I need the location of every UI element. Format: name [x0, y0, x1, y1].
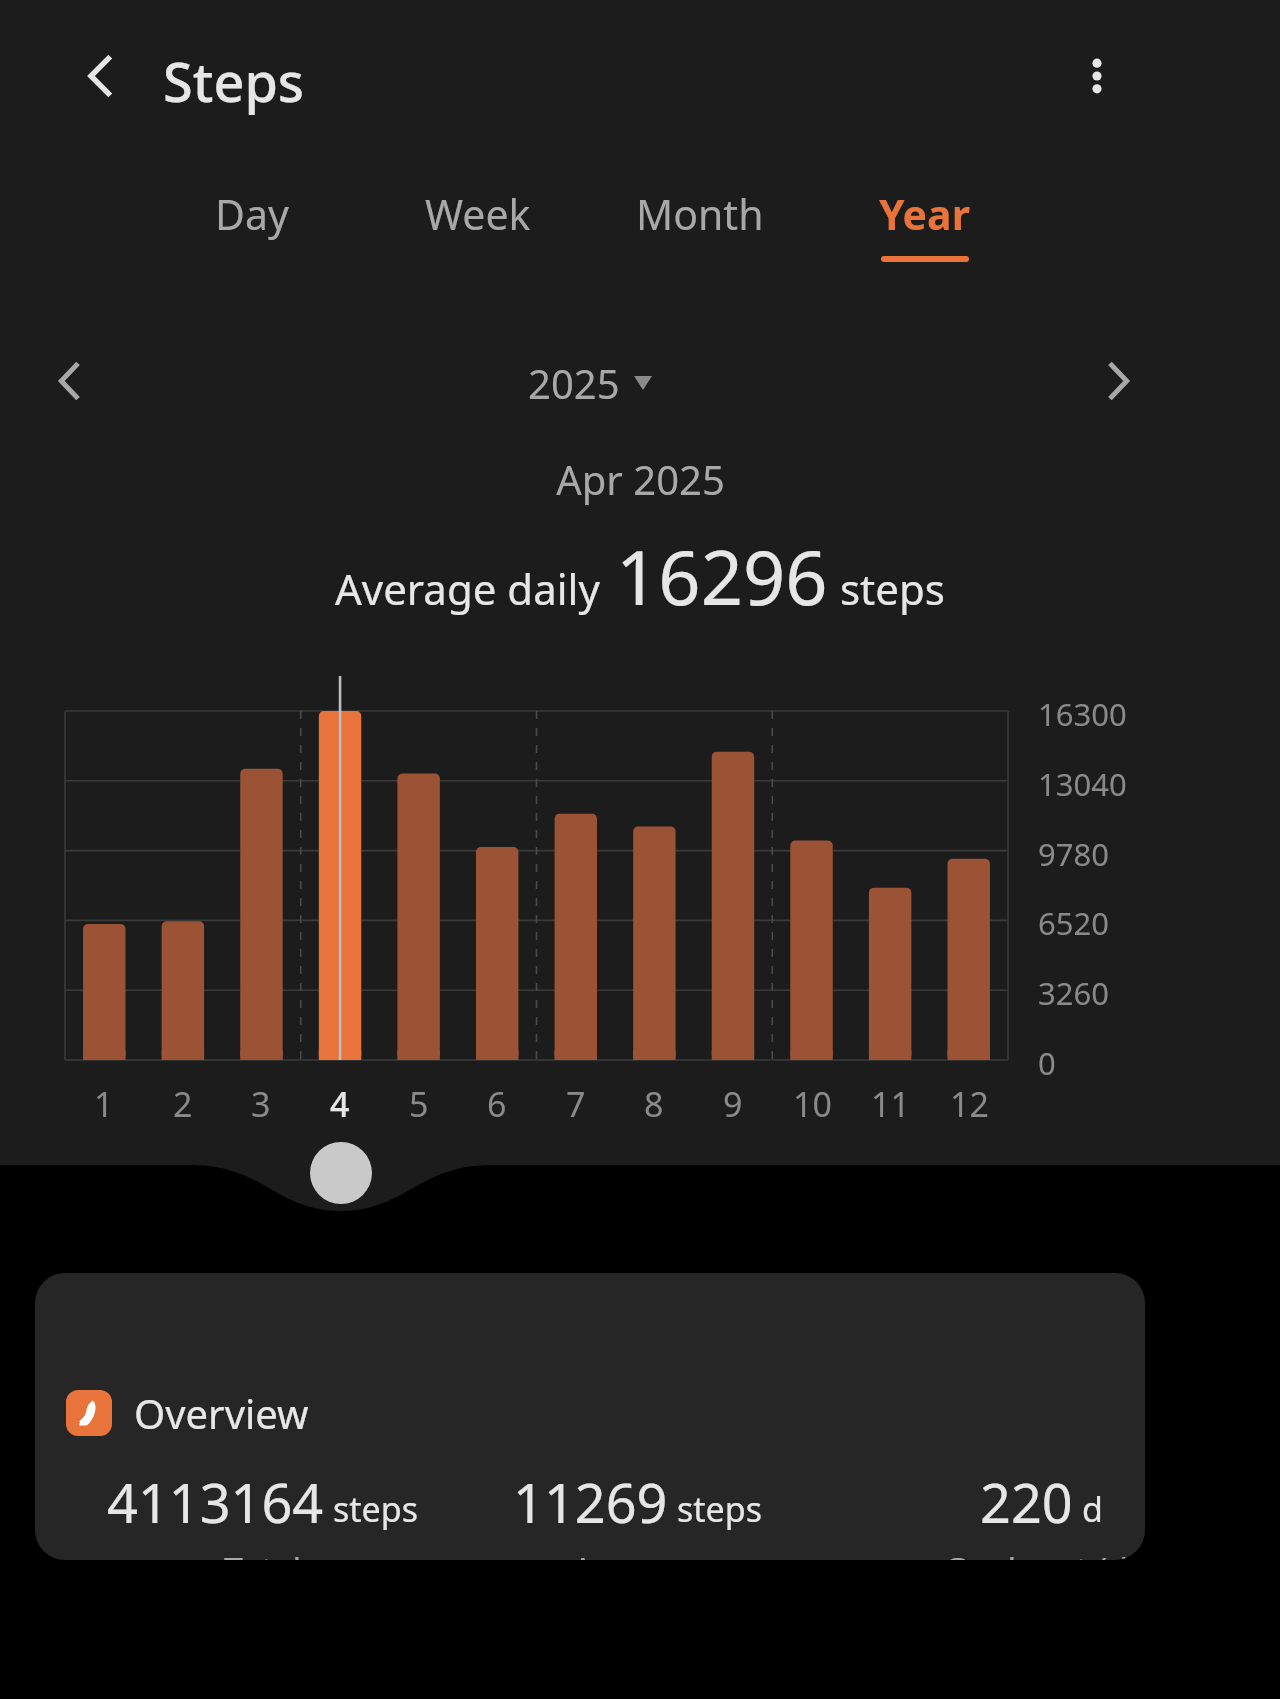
staticText: 13040	[1038, 763, 1127, 805]
staticText: 4	[330, 1081, 350, 1127]
staticText: Apr 2025	[556, 452, 725, 506]
button[interactable]: Overview	[35, 1273, 1145, 1560]
staticText: 1	[94, 1081, 114, 1127]
staticText: Average	[572, 1547, 703, 1560]
staticText: steps	[840, 560, 945, 617]
staticText: Week	[425, 186, 531, 242]
staticText: 7	[566, 1081, 586, 1127]
staticText: steps	[677, 1486, 762, 1532]
staticText: Month	[636, 186, 764, 242]
staticText: 0	[1038, 1042, 1056, 1084]
button[interactable]: Day	[167, 186, 337, 296]
staticText: 4113164	[107, 1465, 324, 1539]
staticText: 12	[950, 1081, 989, 1127]
staticText: 3	[251, 1081, 271, 1127]
staticText: Total	[224, 1547, 302, 1560]
button[interactable]: Next year	[1074, 338, 1160, 424]
button[interactable]: Month	[595, 186, 805, 296]
staticText: 8	[644, 1081, 664, 1127]
staticText: 2	[173, 1081, 193, 1127]
staticText: 10	[793, 1081, 832, 1127]
staticText: Overview	[134, 1386, 309, 1440]
staticText: 5	[409, 1081, 429, 1127]
staticText: 11269	[513, 1465, 668, 1539]
staticText: 9780	[1038, 833, 1109, 875]
staticText: 9	[723, 1081, 743, 1127]
button[interactable]: More options	[1055, 34, 1139, 118]
staticText: Year	[879, 186, 970, 242]
button[interactable]: 2025	[470, 348, 710, 418]
staticText: Day	[215, 186, 289, 242]
button[interactable]: Week	[378, 186, 578, 296]
staticText: 6520	[1038, 902, 1109, 944]
button[interactable]: Drag handle	[295, 1128, 387, 1220]
staticText: Steps	[163, 44, 305, 118]
staticText: 16296	[616, 526, 828, 627]
button[interactable]: Previous year	[28, 338, 114, 424]
staticText: 11	[871, 1081, 910, 1127]
button[interactable]: Back	[60, 34, 144, 118]
button[interactable]: Year	[834, 186, 1014, 296]
staticText: 220	[980, 1465, 1073, 1539]
staticText: Average daily	[335, 560, 600, 617]
staticText: 3260	[1038, 972, 1109, 1014]
staticText: 6	[487, 1081, 507, 1127]
staticText: Goal met (d)	[943, 1547, 1139, 1560]
staticText: 2025	[528, 356, 620, 410]
staticText: 16300	[1038, 693, 1127, 735]
staticText: steps	[333, 1486, 418, 1532]
staticText: d	[1082, 1486, 1103, 1532]
